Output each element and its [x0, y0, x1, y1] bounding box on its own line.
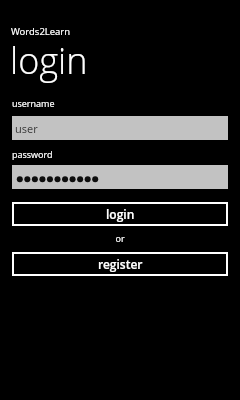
- staticText: login: [106, 206, 135, 222]
- staticText: username: [12, 97, 55, 109]
- button[interactable]: password field: [12, 165, 228, 189]
- staticText: password: [12, 148, 53, 160]
- staticText: Words2Learn: [11, 25, 71, 38]
- staticText: login: [10, 36, 88, 85]
- staticText: or: [0, 232, 240, 244]
- button[interactable]: login: [12, 202, 228, 226]
- staticText: register: [98, 256, 143, 272]
- button[interactable]: register: [12, 252, 228, 276]
- staticText: user: [15, 121, 38, 136]
- button[interactable]: user: [12, 116, 228, 140]
